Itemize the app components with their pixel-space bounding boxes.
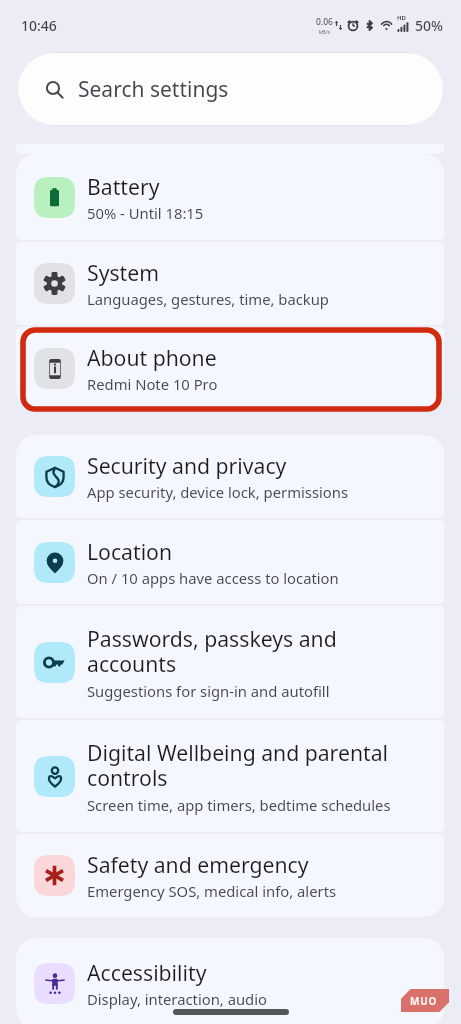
- staticText: App security, device lock, permissions: [87, 482, 348, 502]
- button[interactable]: Digital Wellbeing and parental controls: [16, 720, 444, 832]
- staticText: About phone: [87, 343, 217, 372]
- staticText: Display, interaction, audio: [87, 989, 267, 1009]
- button[interactable]: Passwords, passkeys and accounts: [16, 606, 444, 718]
- staticText: Security and privacy: [87, 451, 287, 480]
- staticText: 50% - Until 18:15: [87, 203, 204, 223]
- button[interactable]: Safety and emergency: [16, 834, 444, 917]
- staticText: Emergency SOS, medical info, alerts: [87, 881, 337, 901]
- staticText: Digital Wellbeing and parental controls: [87, 738, 388, 793]
- staticText: Search settings: [78, 75, 229, 104]
- button[interactable]: Security and privacy: [16, 435, 444, 518]
- staticText: System: [87, 258, 159, 287]
- button[interactable]: Search settings: [17, 52, 444, 126]
- button[interactable]: System: [16, 242, 444, 325]
- staticText: Battery: [87, 172, 160, 201]
- staticText: On / 10 apps have access to location: [87, 568, 339, 588]
- staticText: 10:46: [21, 16, 57, 35]
- staticText: kB/s: [319, 28, 331, 35]
- staticText: Redmi Note 10 Pro: [87, 374, 218, 394]
- staticText: Accessibility: [87, 958, 207, 987]
- button[interactable]: Location: [16, 520, 444, 604]
- staticText: HD: [397, 14, 406, 22]
- staticText: Safety and emergency: [87, 850, 309, 879]
- staticText: Location: [87, 537, 173, 566]
- staticText: Suggestions for sign-in and autofill: [87, 681, 330, 701]
- button[interactable]: Accessibility: [16, 938, 444, 1024]
- staticText: Languages, gestures, time, backup: [87, 289, 329, 309]
- staticText: MUO: [410, 994, 438, 1008]
- staticText: 0.06: [316, 16, 333, 28]
- button[interactable]: About phone: [16, 327, 444, 410]
- staticText: Screen time, app timers, bedtime schedul…: [87, 795, 391, 815]
- staticText: Passwords, passkeys and accounts: [87, 624, 337, 679]
- button[interactable]: Battery: [16, 154, 444, 240]
- staticText: 50%: [415, 16, 443, 35]
